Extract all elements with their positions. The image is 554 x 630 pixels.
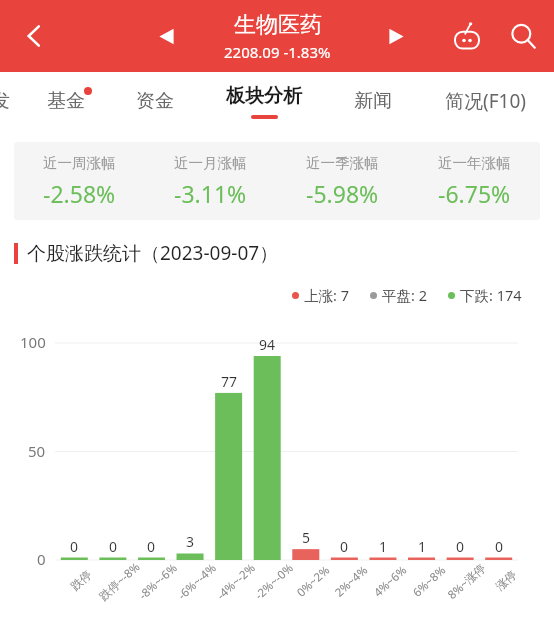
staticText: 1 (418, 537, 427, 556)
button[interactable]: 发 (0, 72, 22, 130)
staticText: 涨停 (493, 567, 519, 593)
staticText: 基金 (47, 89, 85, 113)
button[interactable]: AI assistant (444, 13, 490, 59)
staticText: 生物医药 (234, 11, 322, 39)
staticText: 跌停~-8% (96, 559, 144, 604)
staticText: 个股涨跌统计（2023-09-07） (27, 240, 279, 266)
button[interactable]: 下跌: 174 (448, 285, 522, 305)
button[interactable]: 平盘: 2 (370, 285, 427, 305)
staticText: 3 (186, 532, 195, 551)
staticText: 简况(F10) (445, 88, 526, 114)
staticText: 0 (37, 549, 46, 569)
staticText: 0 (340, 537, 349, 556)
button[interactable]: 板块分析 (199, 72, 328, 130)
button[interactable]: Next sector (374, 14, 418, 58)
staticText: 新闻 (354, 89, 392, 113)
staticText: -3.11% (174, 178, 247, 209)
staticText: -6%~-4% (174, 560, 220, 603)
button[interactable]: 上涨: 7 (292, 285, 349, 305)
staticText: 8%~涨停 (444, 560, 489, 603)
staticText: 上涨: 7 (304, 285, 349, 305)
staticText: 1 (379, 537, 388, 556)
staticText: -2%~-0% (251, 560, 297, 603)
staticText: 近一月涨幅 (174, 154, 247, 172)
staticText: 近一季涨幅 (306, 154, 379, 172)
staticText: 2208.09 -1.83% (224, 42, 331, 62)
staticText: 5 (302, 528, 311, 547)
staticText: 跌停 (68, 567, 94, 593)
staticText: 0 (495, 537, 504, 556)
staticText: 4%~6% (370, 562, 410, 600)
staticText: 近一周涨幅 (43, 154, 116, 172)
staticText: 资金 (136, 89, 174, 113)
staticText: 近一年涨幅 (438, 154, 511, 172)
staticText: 0 (109, 537, 118, 556)
button[interactable]: Search (500, 13, 546, 59)
staticText: 94 (259, 335, 276, 354)
staticText: 100 (20, 332, 46, 352)
staticText: -2.58% (43, 178, 116, 209)
button[interactable]: 近一周涨幅 (14, 142, 540, 220)
staticText: 0 (456, 537, 465, 556)
button[interactable]: 简况(F10) (417, 72, 554, 130)
staticText: -5.98% (306, 178, 379, 209)
button[interactable]: Back (10, 12, 58, 60)
staticText: -8%~-6% (135, 560, 181, 603)
staticText: 发 (0, 89, 10, 113)
staticText: 77 (221, 372, 238, 391)
staticText: 6%~8% (409, 562, 449, 600)
staticText: 50 (28, 441, 46, 461)
staticText: -4%~-2% (213, 560, 259, 603)
staticText: 平盘: 2 (382, 285, 427, 305)
staticText: 2%~4% (331, 562, 371, 600)
staticText: 板块分析 (226, 84, 302, 108)
staticText: 0 (147, 537, 156, 556)
staticText: 0%~2% (293, 562, 333, 600)
button[interactable]: 资金 (110, 72, 199, 130)
staticText: 0 (70, 537, 79, 556)
staticText: 下跌: 174 (460, 285, 522, 305)
button[interactable]: 新闻 (328, 72, 417, 130)
button[interactable]: 基金 (22, 72, 110, 130)
staticText: -6.75% (438, 178, 511, 209)
button[interactable]: Previous sector (144, 14, 188, 58)
